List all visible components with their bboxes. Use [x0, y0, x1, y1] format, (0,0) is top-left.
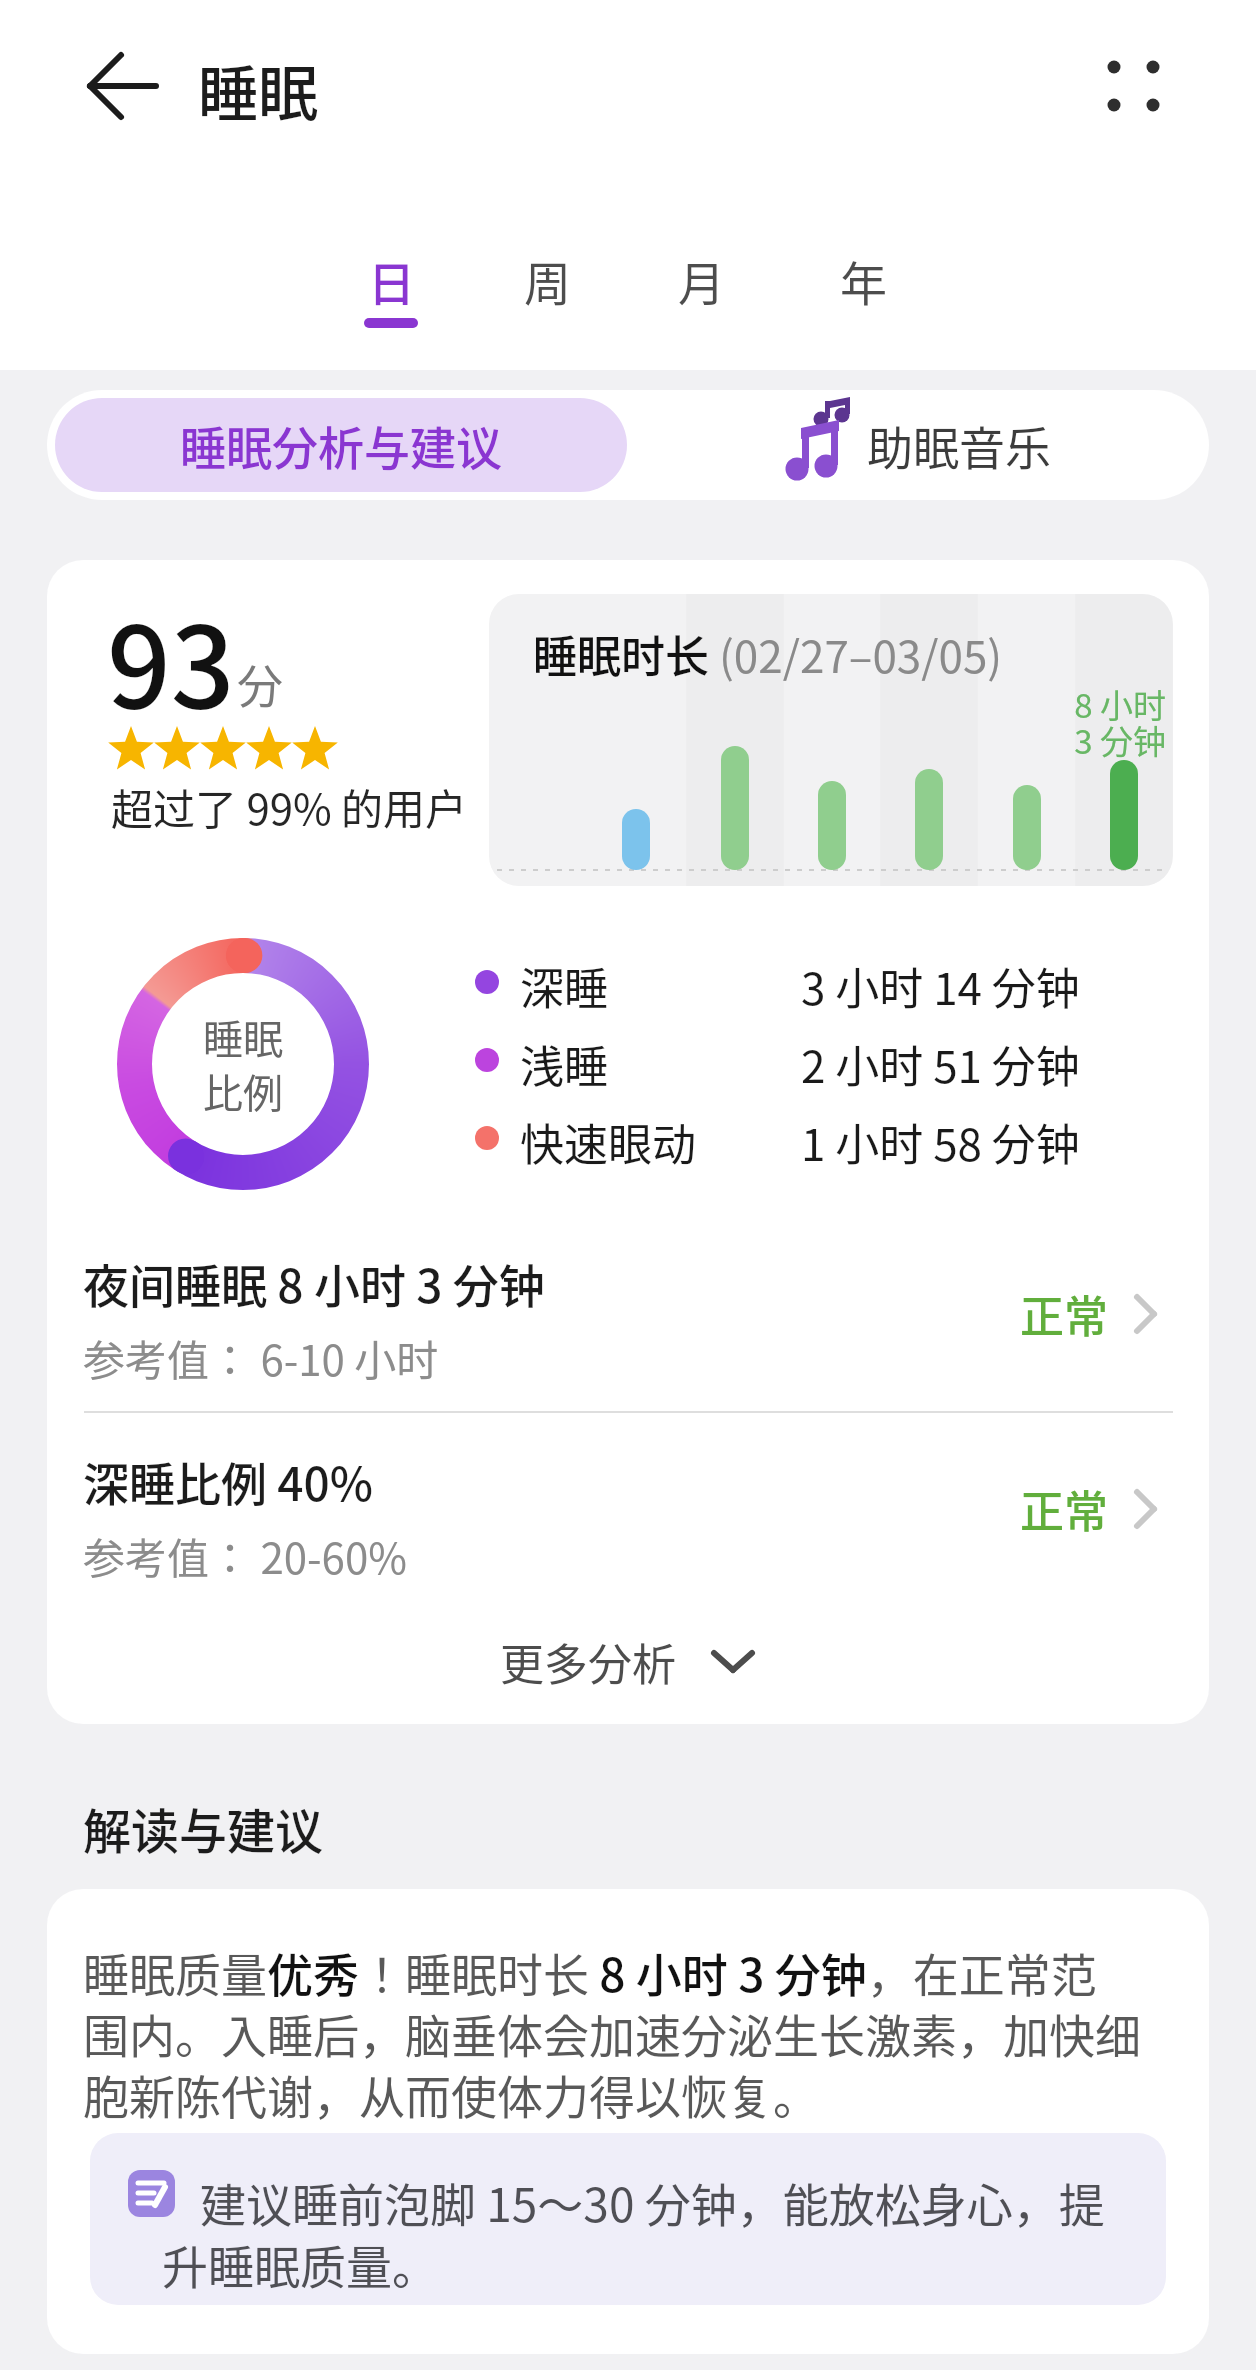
button[interactable]: 年 [808, 238, 918, 322]
staticText: 胞新陈代谢，从而使体力得以恢复。 [83, 2061, 819, 2128]
staticText: 升睡眠质量。 [162, 2231, 438, 2298]
staticText: 93 [107, 578, 235, 740]
staticText: 建议睡前泡脚 15～30 分钟，能放松身心，提 [200, 2169, 1105, 2236]
staticText: 更多分析 [500, 1630, 676, 1694]
staticText: 1 小时 58 分钟 [801, 1110, 1080, 1166]
staticText: 2 小时 51 分钟 [801, 1032, 1080, 1088]
staticText: 正常 [1020, 1282, 1108, 1346]
staticText: 年 [840, 246, 887, 314]
button[interactable]: 正常 [1020, 1282, 1158, 1346]
staticText: 参考值： 6-10 小时 [83, 1327, 439, 1388]
staticText: 分 [237, 650, 283, 717]
staticText: 解读与建议 [83, 1793, 324, 1863]
staticText: 参考值： 20-60% [83, 1525, 407, 1586]
staticText: 周 [524, 246, 571, 314]
button[interactable]: 助眠音乐 [627, 390, 1209, 500]
button[interactable] [76, 44, 168, 128]
staticText: 睡眠时长 [533, 622, 719, 686]
button[interactable]: 睡眠分析与建议 [55, 398, 627, 492]
button[interactable]: 周 [492, 238, 602, 322]
staticText: 助眠音乐 [867, 412, 1051, 479]
button[interactable]: 日 [336, 238, 446, 322]
button[interactable] [1090, 43, 1178, 129]
button[interactable]: 更多分析 [428, 1630, 828, 1694]
staticText: 8 小时 3 分钟 [966, 680, 1166, 763]
staticText: (02/27–03/05) [719, 622, 1003, 686]
staticText: 围内。入睡后，脑垂体会加速分泌生长激素，加快细 [83, 2000, 1141, 2067]
staticText: 正常 [1020, 1477, 1108, 1541]
staticText: 月 [678, 246, 725, 314]
staticText: 睡眠分析与建议 [180, 412, 502, 479]
staticText: 浅睡 [520, 1032, 608, 1088]
button[interactable]: 正常 [1020, 1477, 1158, 1541]
staticText: 深睡 [520, 954, 608, 1010]
staticText: 睡眠质量优秀！睡眠时长 8 小时 3 分钟，在正常范 [83, 1939, 1097, 2006]
staticText: 快速眼动 [520, 1110, 696, 1166]
staticText: 睡眠 [198, 46, 318, 133]
staticText: 深睡比例 40% [83, 1448, 373, 1515]
staticText: 睡眠 比例 [203, 1008, 283, 1120]
staticText: 3 小时 14 分钟 [801, 954, 1080, 1010]
staticText: 夜间睡眠 8 小时 3 分钟 [83, 1250, 545, 1317]
button[interactable]: 月 [646, 238, 756, 322]
staticText: 超过了 99% 的用户 [111, 776, 468, 837]
staticText: 日 [368, 246, 415, 314]
